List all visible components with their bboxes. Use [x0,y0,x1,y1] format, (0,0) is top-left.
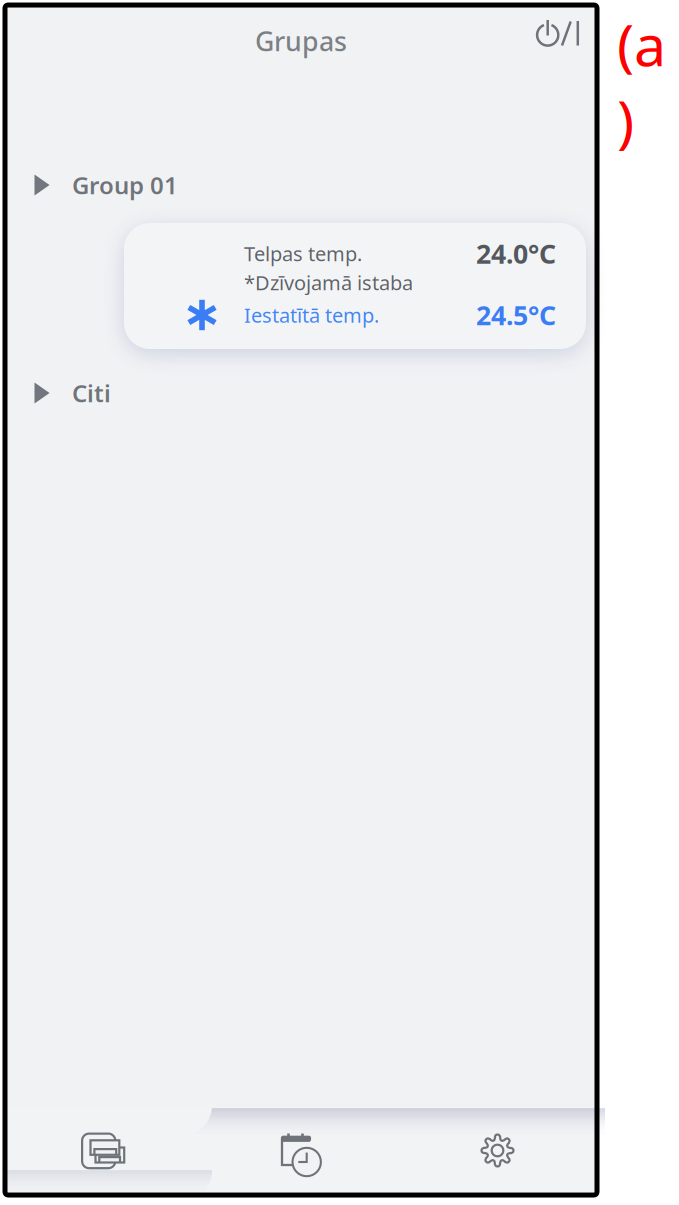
button[interactable]: Group 01 [5,159,597,211]
staticText: Citi [72,377,111,409]
staticText: *Dzīvojamā istaba [244,269,413,296]
staticText: Group 01 [72,169,178,201]
staticText: (a) [617,6,666,158]
button[interactable]: Groups [5,1108,203,1195]
button[interactable]: Power [521,16,597,66]
staticText: Telpas temp. [244,240,362,267]
button[interactable]: Settings [400,1108,597,1195]
button[interactable]: Citi [5,367,597,419]
staticText: 24.0°C [476,236,556,271]
staticText: Iestatītā temp. [244,302,379,328]
button[interactable]: Schedule [203,1108,400,1195]
staticText: 24.5°C [476,297,556,333]
staticText: Grupas [255,23,347,59]
